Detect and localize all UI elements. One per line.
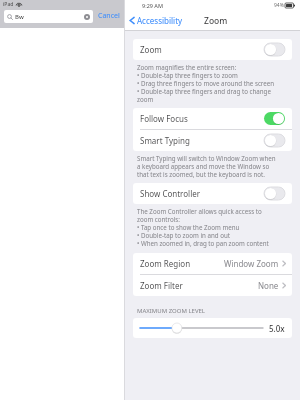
button[interactable]: Zoom Filter (133, 275, 292, 296)
button[interactable]: Cancel (97, 9, 121, 23)
button[interactable]: Bw (4, 10, 93, 23)
staticText: iPad (3, 1, 14, 8)
staticText: 94% (274, 2, 284, 9)
staticText: • Tap once to show the Zoom menu (137, 223, 240, 231)
staticText: MAXIMUM ZOOM LEVEL (137, 307, 205, 315)
staticText: Show Controller (140, 188, 201, 199)
staticText: The Zoom Controller allows quick access … (137, 207, 262, 215)
staticText: Zoom Region (140, 258, 191, 269)
staticText: • Double-tap three fingers and drag to c… (137, 87, 271, 95)
button[interactable]: Accessibility (128, 13, 184, 28)
staticText: • Double-tap three fingers to zoom (137, 71, 238, 79)
staticText: • Drag three fingers to move around the … (137, 79, 275, 87)
button[interactable]: Smart Typing (133, 130, 292, 151)
staticText: • Double-tap to zoom in and out (137, 231, 230, 239)
button[interactable]: Zoom (133, 39, 292, 60)
staticText: Follow Focus (140, 113, 188, 124)
button[interactable]: Zoom Region (133, 253, 292, 274)
button[interactable]: Off (264, 134, 285, 147)
button[interactable]: Show Controller (133, 183, 292, 204)
staticText: Window Zoom (224, 258, 279, 269)
staticText: that text is zoomed, but the keyboard is… (137, 170, 265, 178)
staticText: zoom controls: (137, 215, 180, 223)
staticText: Smart Typing will switch to Window Zoom … (137, 154, 276, 162)
button[interactable]: Maximum zoom level slider (140, 321, 263, 335)
button[interactable]: Follow Focus (133, 108, 292, 129)
staticText: • When zoomed in, drag to pan zoom conte… (137, 239, 269, 247)
staticText: Accessibility (137, 15, 183, 26)
staticText: Bw (15, 13, 24, 21)
staticText: Zoom (140, 44, 162, 55)
button[interactable]: Off (264, 187, 285, 200)
staticText: None (258, 280, 279, 291)
staticText: Smart Typing (140, 135, 190, 146)
staticText: 9:29 AM (142, 2, 164, 9)
staticText: a keyboard appears and move the Window s… (137, 162, 270, 170)
button[interactable]: On (264, 112, 285, 125)
staticText: Cancel (98, 11, 120, 21)
button[interactable]: Off (264, 43, 285, 56)
staticText: Zoom Filter (140, 280, 183, 291)
staticText: Zoom (204, 15, 228, 27)
staticText: Zoom magnifies the entire screen: (137, 63, 237, 71)
button[interactable]: Clear search (84, 14, 90, 20)
staticText: 5.0x (269, 323, 285, 334)
staticText: zoom (137, 95, 154, 103)
